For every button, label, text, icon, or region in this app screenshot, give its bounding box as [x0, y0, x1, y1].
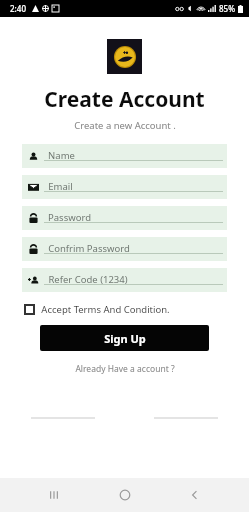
- other: App logo: [107, 39, 142, 74]
- button[interactable]: Name: [22, 144, 227, 168]
- button[interactable]: Confrim Password: [22, 237, 227, 261]
- staticText: Already Have a account ?: [75, 363, 175, 375]
- button[interactable]: Home: [108, 478, 142, 512]
- button[interactable]: Back: [178, 478, 212, 512]
- staticText: Name: [48, 149, 75, 162]
- staticText: Sign Up: [104, 331, 146, 346]
- staticText: Confrim Password: [48, 242, 130, 255]
- staticText: Create Account: [44, 85, 205, 114]
- staticText: 85%: [219, 3, 235, 14]
- staticText: Create a new Account .: [74, 119, 176, 132]
- button[interactable]: Accept Terms And Condition.: [22, 301, 172, 318]
- button[interactable]: Sign Up: [40, 325, 209, 351]
- button[interactable]: Email: [22, 175, 227, 199]
- staticText: 2:40: [10, 3, 26, 14]
- staticText: Email: [48, 180, 73, 193]
- button[interactable]: Refer Code (1234): [22, 268, 227, 292]
- button[interactable]: Password: [22, 206, 227, 230]
- staticText: Accept Terms And Condition.: [41, 303, 170, 316]
- button[interactable]: Recent apps: [37, 478, 71, 512]
- staticText: Refer Code (1234): [48, 273, 128, 286]
- button[interactable]: Already Have a account ?: [0, 363, 249, 375]
- staticText: Password: [48, 211, 91, 224]
